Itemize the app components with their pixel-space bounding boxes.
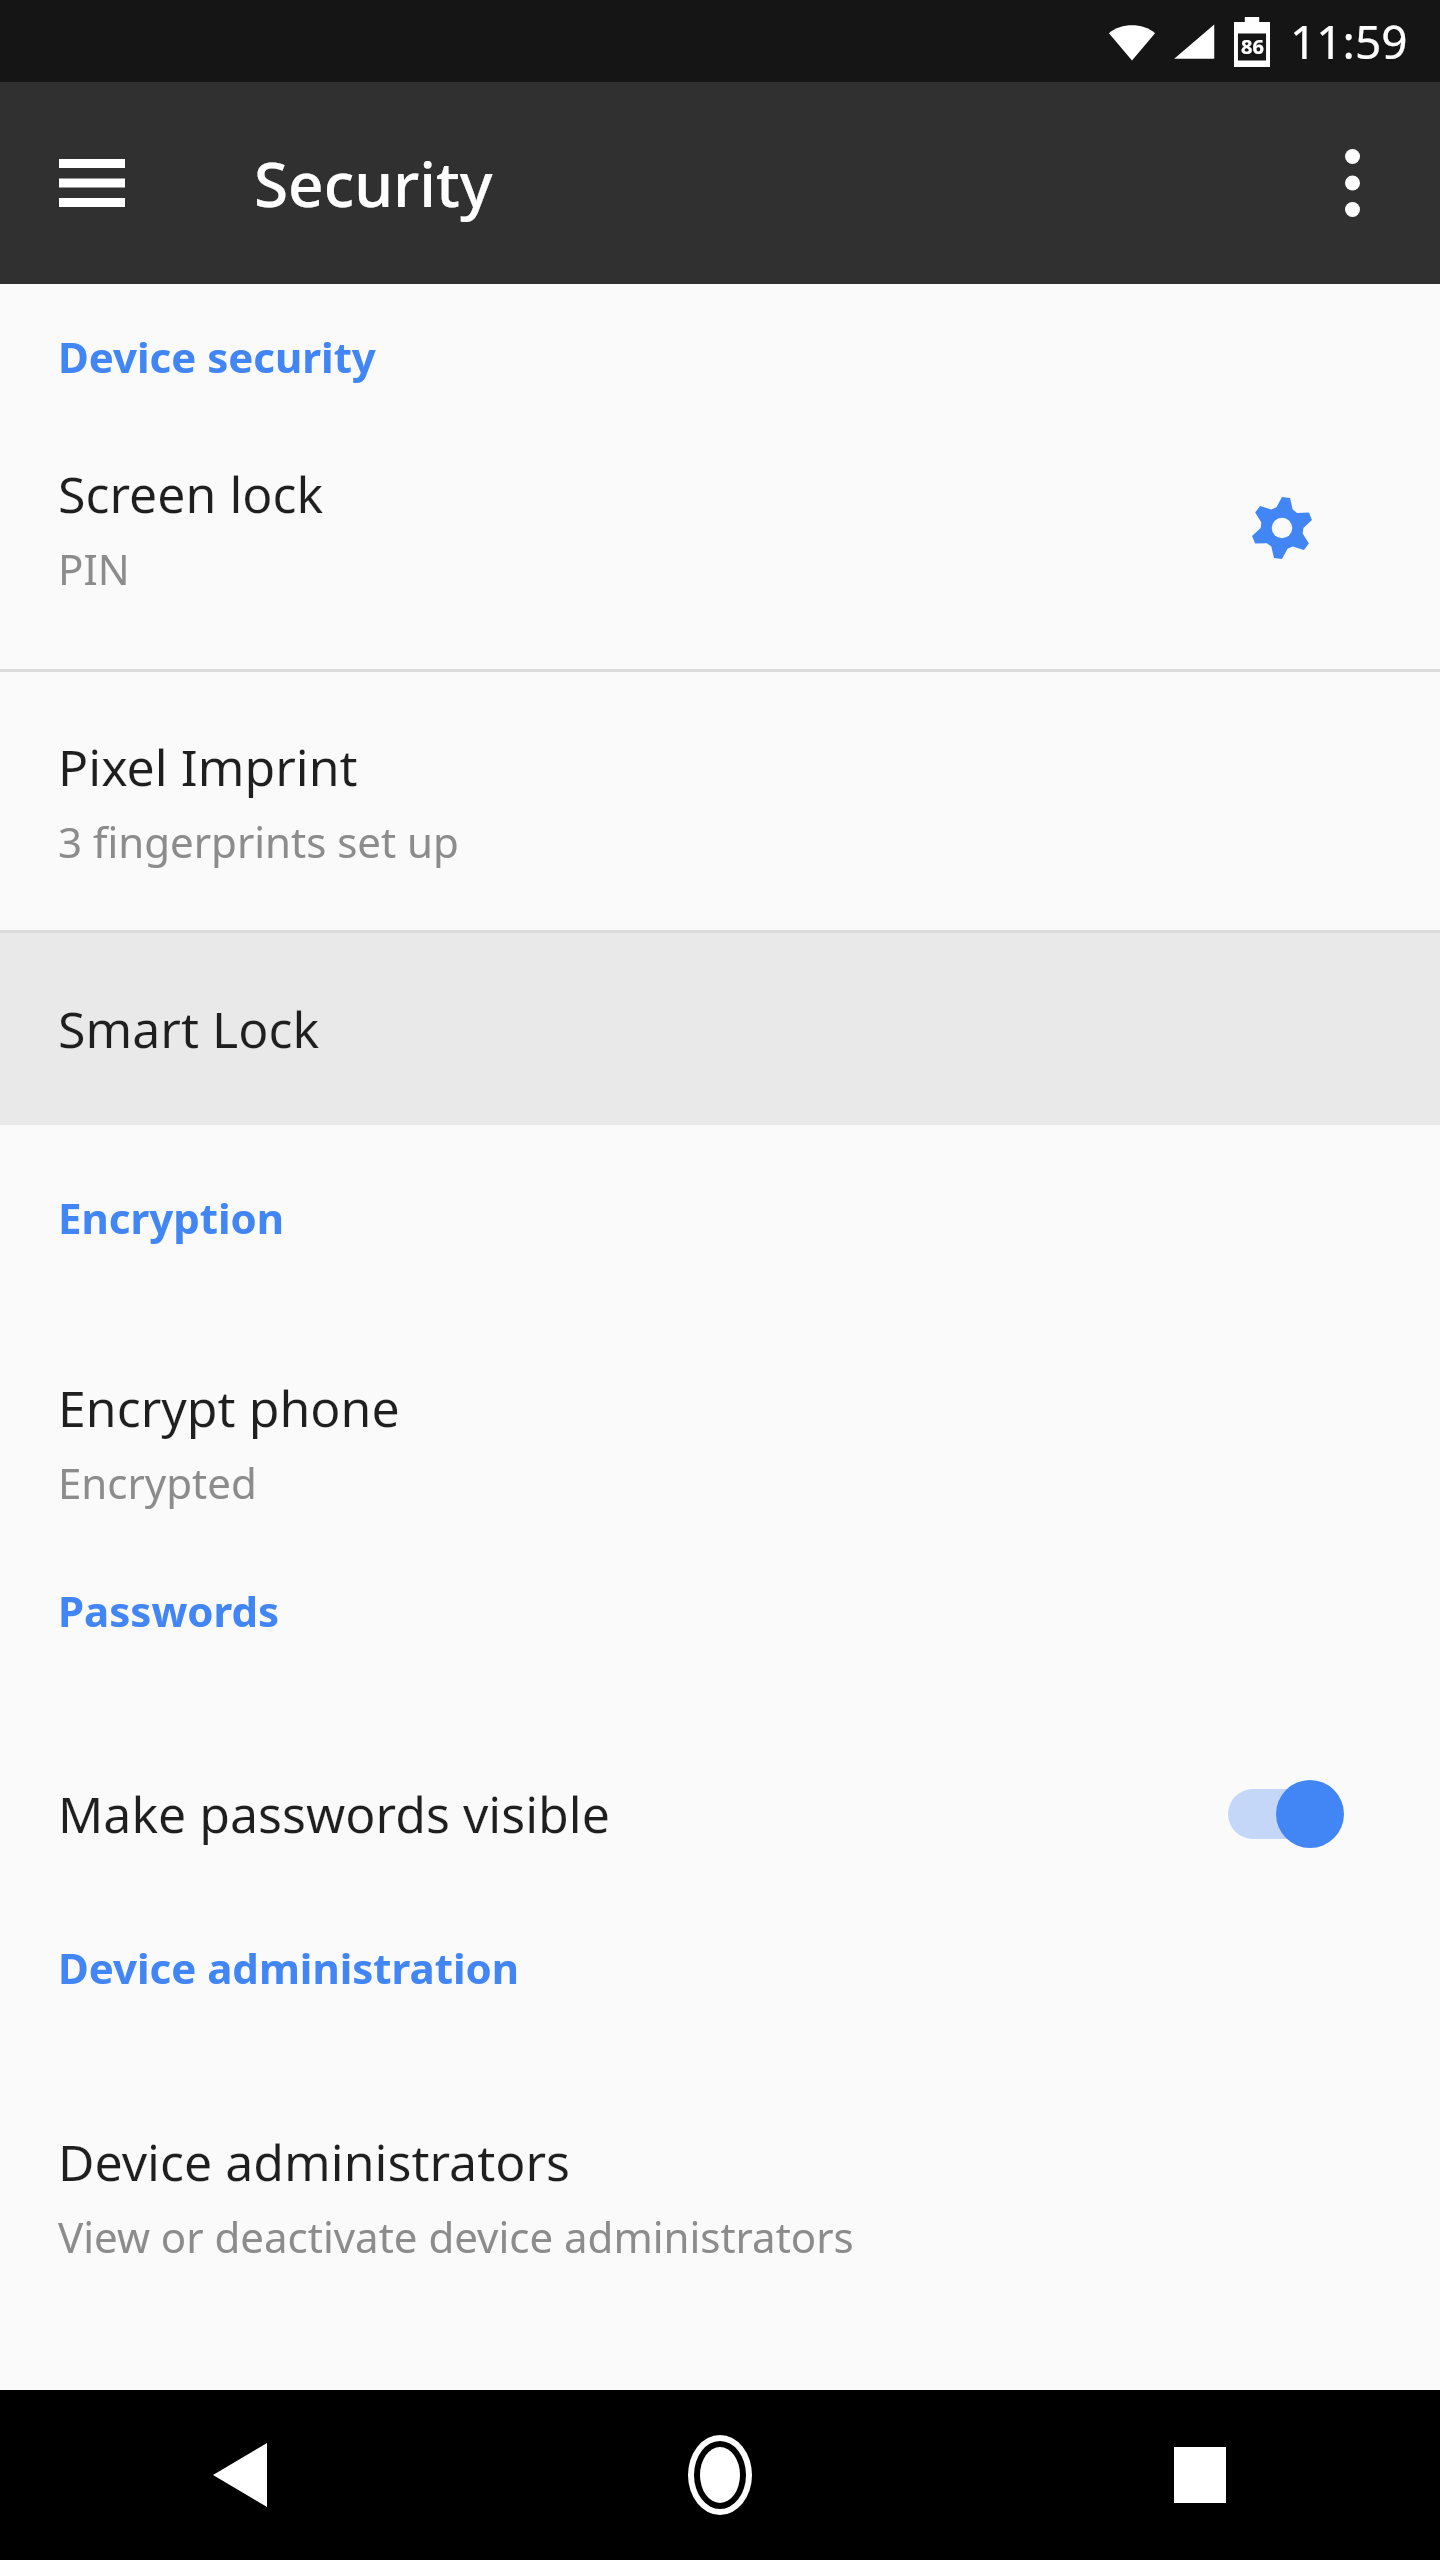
button[interactable]: Make passwords visible xyxy=(1226,1766,1376,1862)
button[interactable]: Device administrators xyxy=(0,2116,1440,2276)
staticText: Smart Lock xyxy=(58,995,320,1063)
button[interactable]: Back xyxy=(0,2390,480,2560)
staticText: 86 xyxy=(1241,33,1264,60)
button[interactable]: Make passwords visible xyxy=(0,1759,1440,1869)
staticText: PIN xyxy=(58,540,130,597)
button[interactable]: More options xyxy=(1282,113,1422,253)
button[interactable]: Encrypt phone xyxy=(0,1362,1440,1522)
staticText: Device security xyxy=(58,328,376,385)
staticText: Screen lock xyxy=(58,460,324,528)
staticText: Device administration xyxy=(58,1939,519,1996)
button[interactable]: Screen lock settings xyxy=(1226,472,1338,584)
staticText: Make passwords visible xyxy=(58,1780,610,1848)
staticText: 3 fingerprints set up xyxy=(58,813,459,870)
button[interactable]: Open navigation drawer xyxy=(22,113,162,253)
staticText: Pixel Imprint xyxy=(58,733,358,801)
button[interactable]: Home xyxy=(480,2390,960,2560)
staticText: Encryption xyxy=(58,1189,285,1246)
button[interactable]: Recent apps xyxy=(960,2390,1440,2560)
button[interactable]: Smart Lock xyxy=(0,933,1440,1125)
staticText: View or deactivate device administrators xyxy=(58,2208,854,2265)
staticText: Device administrators xyxy=(58,2128,571,2196)
staticText: Encrypted xyxy=(58,1454,257,1511)
staticText: 11:59 xyxy=(1290,10,1408,73)
staticText: Encrypt phone xyxy=(58,1374,400,1442)
button[interactable]: Screen lock xyxy=(0,443,1440,613)
staticText: Passwords xyxy=(58,1582,280,1639)
button[interactable]: Pixel Imprint xyxy=(0,672,1440,930)
staticText: Security xyxy=(254,141,493,225)
